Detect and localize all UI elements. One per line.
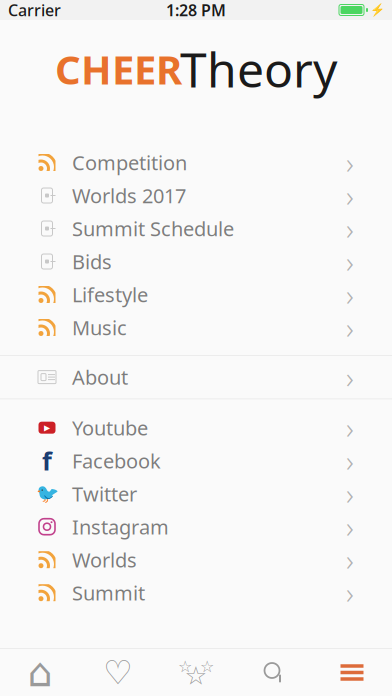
staticText: Instagram [72,513,169,540]
button[interactable]: Instagram [0,510,392,543]
button[interactable]: Summit Schedule [0,212,392,245]
staticText: Twitter [72,480,137,507]
button[interactable]: Worlds 2017 [0,179,392,212]
staticText: › [346,209,354,248]
staticText: ⚡ [370,3,385,17]
staticText: ☆ [184,661,207,690]
staticText: CHEER [55,42,182,95]
staticText: About [72,364,128,390]
staticText: ☆ [178,657,192,676]
staticText: 🐦 [35,483,58,504]
staticText: › [346,573,354,612]
button[interactable]: Home [1,649,79,696]
staticText: › [346,441,354,480]
staticText: › [346,408,354,447]
staticText: Theory [180,36,337,102]
staticText: Youtube [72,414,148,441]
staticText: › [346,308,354,347]
button[interactable]: Menu [313,649,391,696]
staticText: Worlds 2017 [72,182,186,209]
button[interactable]: Bids [0,245,392,278]
staticText: › [346,358,354,397]
staticText: › [346,242,354,281]
staticText: › [346,507,354,546]
button[interactable]: Lifestyle [0,278,392,311]
staticText: › [346,176,354,215]
button[interactable]: ▶ [0,411,392,444]
button[interactable]: f [0,444,392,477]
staticText: ⌂ [27,650,52,695]
staticText: › [346,275,354,314]
button[interactable]: Competition [0,146,392,179]
staticText: Summit [72,579,145,606]
staticText: ♡ [103,654,133,691]
staticText: Music [72,314,127,341]
staticText: 1:28 PM [166,0,226,21]
button[interactable]: Search [235,649,313,696]
button[interactable]: Summit [0,576,392,609]
button[interactable]: Favorites [79,649,157,696]
staticText: f [42,444,52,477]
button[interactable]: Top Rated [157,649,235,696]
staticText: › [346,540,354,579]
button[interactable]: Worlds [0,543,392,576]
staticText: Carrier [8,0,61,21]
button[interactable]: Music [0,311,392,344]
staticText: › [346,474,354,513]
staticText: Worlds [72,546,137,573]
staticText: Competition [72,149,187,176]
staticText: Bids [72,248,112,275]
staticText: Lifestyle [72,281,148,308]
button[interactable]: About [0,361,392,394]
staticText: Summit Schedule [72,215,234,242]
staticText: › [346,143,354,182]
button[interactable]: 🐦 [0,477,392,510]
staticText: ▶ [44,423,50,432]
staticText: ☆ [200,657,214,676]
staticText: Facebook [72,447,161,474]
